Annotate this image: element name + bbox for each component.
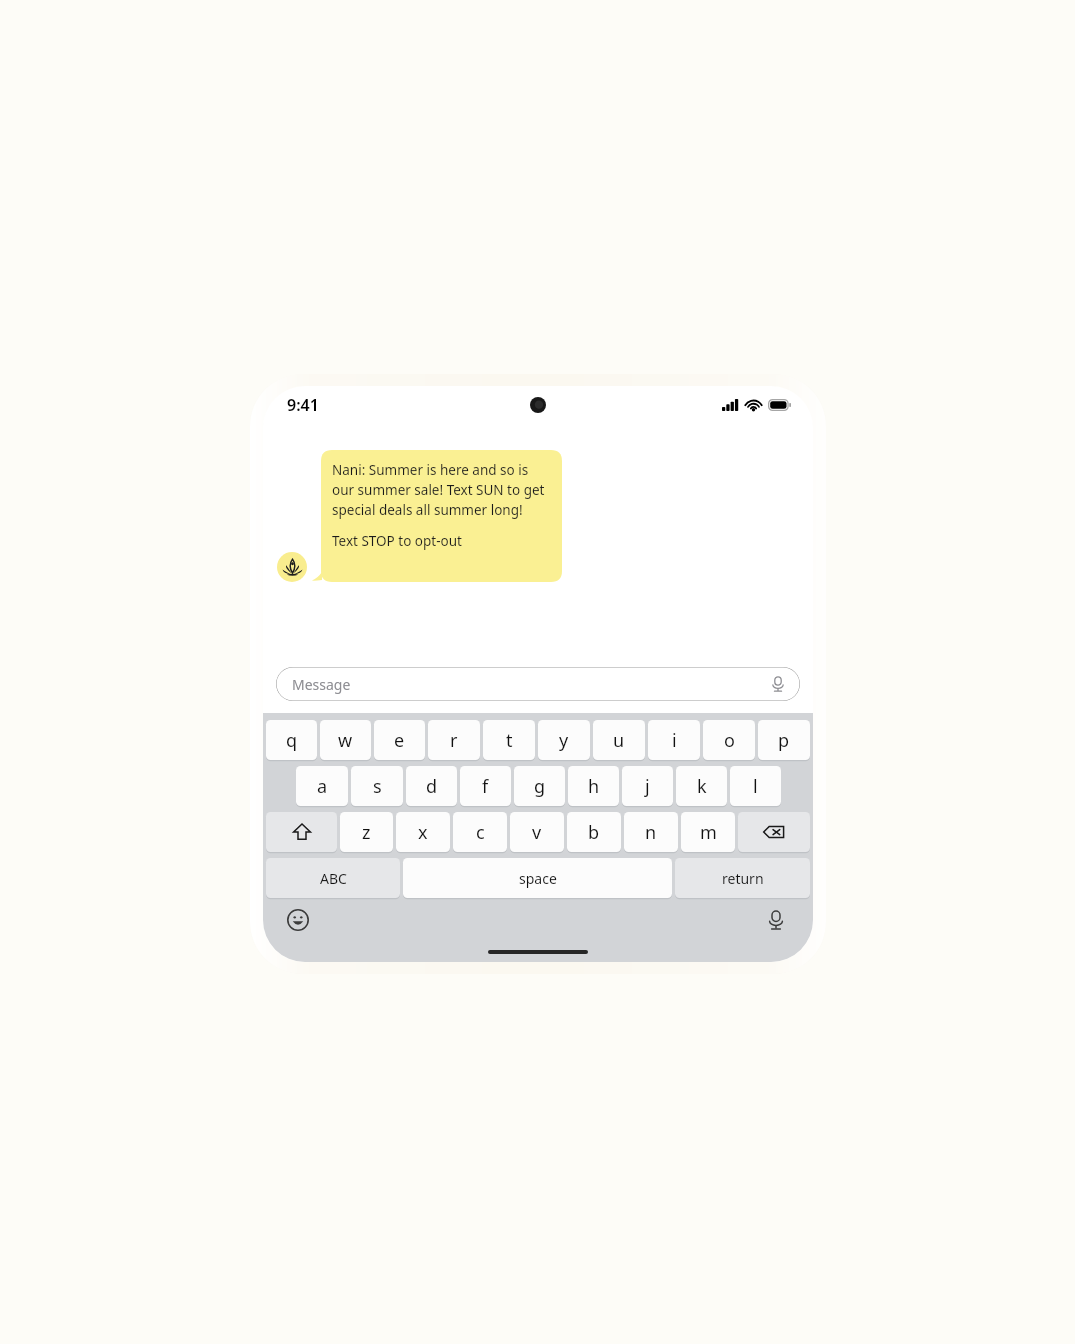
staticText: ABC [320,869,347,888]
button[interactable]: w [320,720,371,760]
button[interactable]: c [453,812,507,852]
button[interactable]: f [460,766,511,806]
button[interactable]: g [514,766,565,806]
button[interactable]: r [428,720,480,760]
button[interactable]: b [567,812,621,852]
button[interactable]: z [340,812,393,852]
button[interactable]: Dictate [763,907,789,933]
staticText: q [286,728,298,753]
button[interactable]: l [730,766,781,806]
staticText: h [588,774,600,799]
button[interactable]: h [568,766,619,806]
button[interactable]: i [648,720,700,760]
staticText: a [317,774,328,799]
button[interactable]: e [374,720,425,760]
staticText: j [645,774,650,799]
button[interactable]: q [266,720,317,760]
staticText: 9:41 [287,394,319,416]
staticText: return [722,869,764,888]
staticText: i [672,728,677,753]
staticText: u [613,728,625,753]
button[interactable]: p [758,720,810,760]
staticText: Nani: Summer is here and so is our summe… [332,461,550,519]
staticText: f [482,774,489,799]
button[interactable]: n [624,812,678,852]
button[interactable]: d [406,766,457,806]
staticText: d [426,774,438,799]
staticText: o [724,728,735,753]
button[interactable]: Message [276,667,800,701]
staticText: k [697,774,707,799]
button[interactable]: t [483,720,535,760]
staticText: c [476,820,485,845]
staticText: v [532,820,542,845]
button[interactable]: return [675,858,810,898]
button[interactable]: y [538,720,590,760]
button[interactable]: s [351,766,403,806]
button[interactable]: space [403,858,672,898]
staticText: b [588,820,600,845]
staticText: e [394,728,405,753]
button[interactable]: u [593,720,645,760]
staticText: space [519,869,557,888]
button[interactable]: Emoji [285,907,311,933]
staticText: p [778,728,790,753]
staticText: r [450,728,458,753]
button[interactable]: Nani: Summer is here and so is our summe… [332,461,550,550]
staticText: g [534,774,546,799]
staticText: s [373,774,382,799]
staticText: w [338,728,353,753]
button[interactable]: x [396,812,450,852]
button[interactable]: Sender avatar [277,552,307,582]
staticText: m [700,820,717,845]
staticText: n [645,820,657,845]
button[interactable]: j [622,766,673,806]
button[interactable]: a [296,766,348,806]
staticText: l [753,774,758,799]
button[interactable]: Shift [266,812,337,852]
button[interactable]: m [681,812,735,852]
button[interactable]: o [703,720,755,760]
staticText: t [506,728,513,753]
button[interactable]: Voice input [769,675,787,693]
staticText: Message [292,675,351,694]
button[interactable]: v [510,812,564,852]
button[interactable]: Backspace [738,812,810,852]
button[interactable]: k [676,766,727,806]
button[interactable]: ABC [266,858,400,898]
staticText: x [418,820,428,845]
staticText: Text STOP to opt-out [332,532,462,550]
staticText: z [362,820,371,845]
staticText: y [559,728,569,753]
